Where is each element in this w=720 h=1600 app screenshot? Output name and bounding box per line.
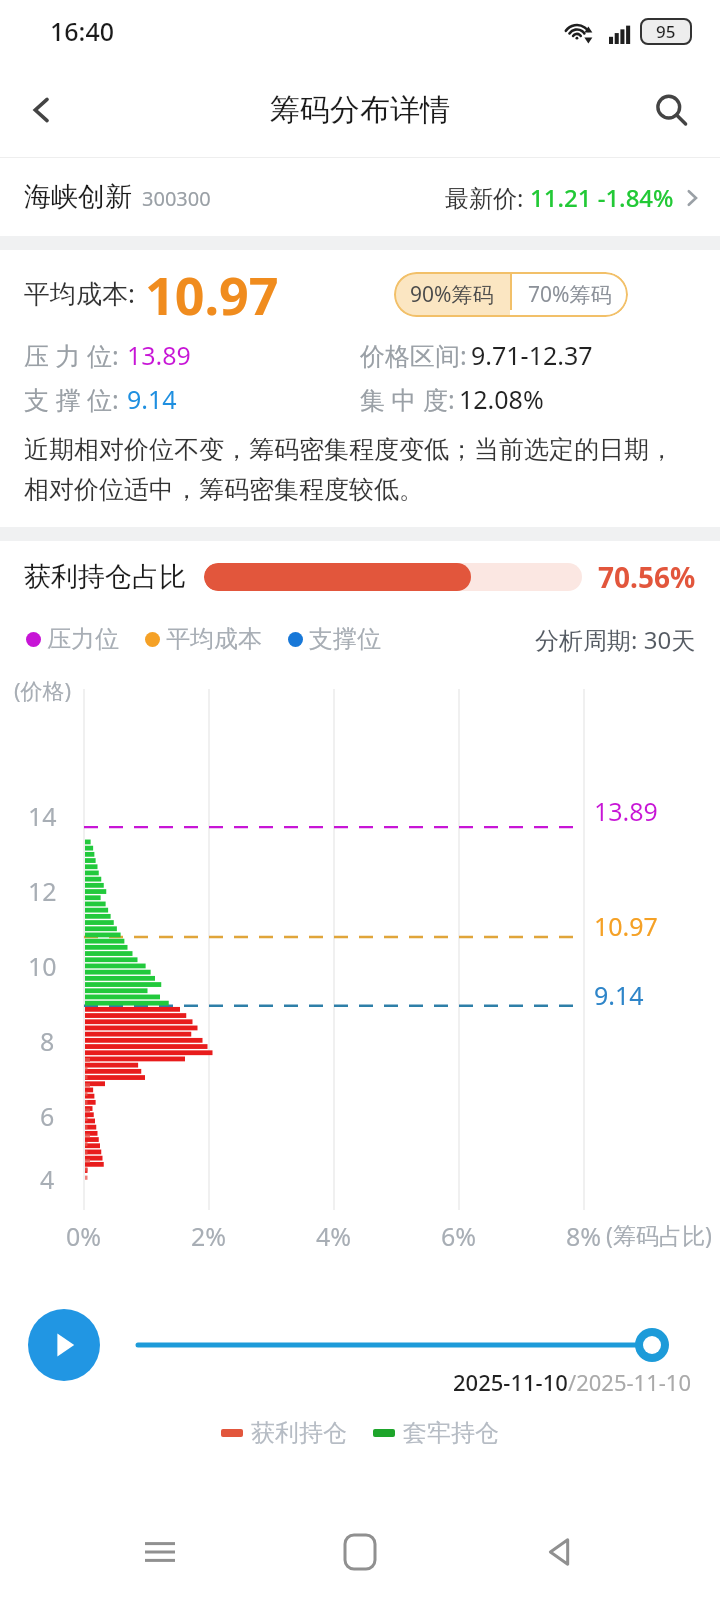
staticText: 8% [566,1219,602,1253]
staticText: 13.89 [127,338,191,372]
staticText: 12.08% [459,382,544,416]
staticText: 95 [656,20,676,43]
button[interactable]: Search [642,81,700,139]
staticText: 70%筹码 [528,280,612,309]
staticText: 6% [441,1219,477,1253]
button[interactable]: 最新价: [445,181,702,214]
staticText: 0% [66,1219,102,1253]
staticText: 13.89 [594,794,658,828]
staticText: 海峡创新 [24,180,132,214]
button[interactable]: Play [28,1309,100,1381]
staticText: 16:40 [50,14,115,48]
staticText: 获利持仓 [251,1418,347,1448]
staticText: 套牢持仓 [403,1418,499,1448]
staticText: 6 [40,1099,55,1133]
button[interactable]: Back [14,82,70,138]
staticText: 10.97 [594,909,658,943]
staticText: 10.97 [145,259,279,330]
staticText: 价格区间: [360,338,467,372]
staticText: 压力位 [47,624,119,654]
staticText: 4% [316,1219,352,1253]
staticText: (价格) [14,675,72,705]
staticText: 8 [40,1024,55,1058]
button[interactable]: Recent apps [120,1512,200,1592]
staticText: 获利持仓占比 [24,560,186,594]
staticText: 70.56% [598,558,696,596]
staticText: 2025-11-10 [453,1367,568,1397]
button[interactable]: 70%筹码 [512,272,628,317]
staticText: 9.14 [594,978,644,1012]
button[interactable]: Back [520,1512,600,1592]
staticText: 4 [40,1162,55,1196]
staticText: 11.21 -1.84% [530,181,674,214]
staticText: 压 力 位: [24,338,119,372]
staticText: 集 中 度: [360,382,455,416]
staticText: 2% [191,1219,227,1253]
staticText: 9.71-12.37 [471,338,593,372]
button[interactable]: 90%筹码 [394,272,510,317]
staticText: 支撑位 [309,624,381,654]
staticText: /2025-11-10 [568,1367,692,1397]
staticText: 最新价: [445,181,530,214]
staticText: 9.14 [127,382,177,416]
staticText: 300300 [142,185,211,212]
staticText: (筹码占比) [606,1219,712,1250]
staticText: 12 [28,874,57,908]
staticText: 90%筹码 [410,280,494,309]
staticText: 近期相对价位不变，筹码密集程度变低；当前选定的日期，相对价位适中，筹码密集程度较… [24,434,696,505]
staticText: 支 撑 位: [24,382,119,416]
staticText: 平均成本 [166,624,262,654]
staticText: 筹码分布详情 [270,91,450,129]
staticText: 分析周期: 30天 [535,623,696,656]
staticText: 14 [28,799,57,833]
button[interactable] [138,1321,692,1369]
staticText: 平均成本: [24,275,135,311]
staticText: 10 [28,949,57,983]
button[interactable]: Home [320,1512,400,1592]
